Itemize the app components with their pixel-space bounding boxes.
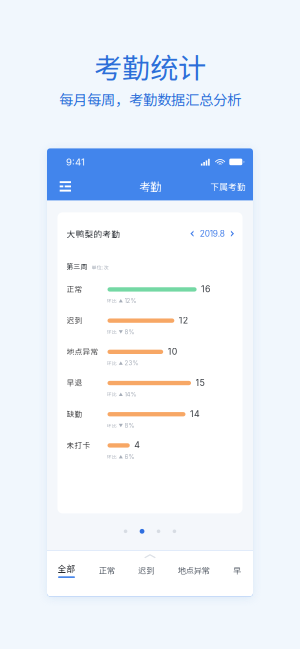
staticText: 迟到	[138, 564, 154, 576]
staticText: 正常	[99, 564, 115, 576]
staticText: 12	[179, 315, 188, 326]
staticText: 14%	[125, 391, 137, 398]
staticText: 每月每周，考勤数据汇总分析	[59, 88, 241, 109]
staticText: 12%	[125, 297, 137, 304]
staticText: 环比	[107, 391, 117, 398]
staticText: 正常	[66, 283, 82, 294]
staticText: 4	[134, 440, 140, 450]
staticText: 环比	[107, 328, 117, 335]
staticText: 8%	[125, 422, 135, 429]
staticText: 2019.8	[200, 229, 225, 239]
staticText: 环比	[107, 422, 117, 429]
staticText: 迟到	[66, 314, 82, 325]
button[interactable]: 下属考勤	[210, 175, 246, 198]
staticText: 缺勤	[66, 408, 82, 419]
staticText: 早	[233, 564, 241, 576]
staticText: 15	[196, 377, 205, 388]
staticText: 早退	[66, 377, 82, 388]
staticText: 下属考勤	[210, 180, 246, 193]
staticText: 第三周	[66, 261, 87, 271]
staticText: 14	[190, 409, 200, 419]
staticText: 未打卡	[66, 439, 90, 450]
staticText: 地点异常	[66, 345, 98, 357]
button[interactable]: Previous month	[187, 231, 196, 237]
staticText: 大鸭梨的考勤	[66, 227, 120, 240]
button[interactable]: 早	[233, 564, 241, 576]
staticText: 16	[201, 284, 210, 294]
staticText: 8%	[125, 328, 135, 336]
button[interactable]: Next month	[228, 231, 237, 237]
staticText: 环比	[107, 360, 117, 366]
staticText: 考勤	[139, 178, 161, 195]
staticText: 6%	[125, 453, 135, 460]
staticText: 环比	[107, 297, 117, 304]
button[interactable]: 正常	[99, 564, 115, 576]
staticText: 地点异常	[178, 564, 210, 576]
button[interactable]: 全部	[57, 562, 75, 578]
staticText: 全部	[57, 562, 75, 575]
staticText: 单位: 次	[91, 264, 108, 271]
staticText: 23%	[125, 359, 139, 367]
button[interactable]: 迟到	[138, 564, 154, 576]
staticText: 9:41	[66, 156, 85, 168]
button[interactable]: 地点异常	[178, 564, 210, 576]
staticText: 10	[168, 346, 178, 357]
staticText: 考勤统计	[94, 46, 206, 86]
staticText: 环比	[107, 453, 117, 460]
button[interactable]: Menu	[56, 176, 75, 197]
